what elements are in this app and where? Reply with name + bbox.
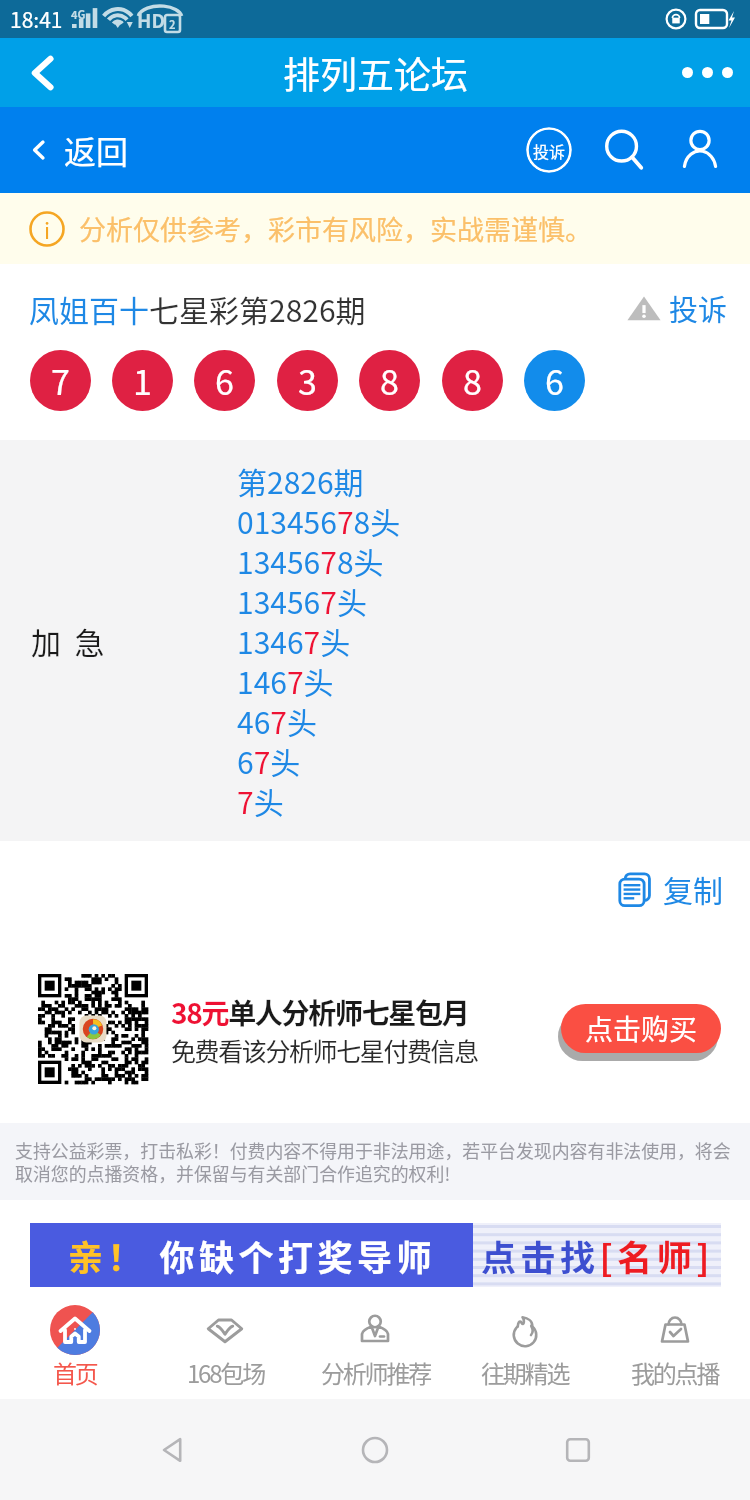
button[interactable]: 返回 xyxy=(0,107,750,193)
button[interactable]: 8 xyxy=(359,350,420,411)
staticText: 排列五论坛 xyxy=(283,46,468,100)
staticText: 分析仅供参考，彩市有风险，实战需谨慎。 xyxy=(79,209,592,248)
staticText: 首页 xyxy=(53,1355,97,1390)
button[interactable]: 6 xyxy=(524,350,585,411)
staticText: 亲！ 你缺个打奖导师 xyxy=(68,1230,436,1281)
button[interactable]: 投诉 xyxy=(626,287,728,329)
staticText: 点击找[名师] xyxy=(481,1230,714,1281)
staticText: 3 xyxy=(298,356,317,405)
button[interactable]: 6 xyxy=(194,350,255,411)
button[interactable]: 首页 xyxy=(0,1288,150,1399)
button[interactable]: Profile xyxy=(676,126,724,174)
staticText: 支持公益彩票，打击私彩！付费内容不得用于非法用途，若平台发现内容有非法使用，将会… xyxy=(15,1137,742,1186)
staticText: 6 xyxy=(215,356,234,405)
button[interactable]: More options xyxy=(664,38,750,107)
staticText: 4G xyxy=(71,6,86,22)
button[interactable]: 1 xyxy=(112,350,173,411)
button[interactable]: 亲！ 你缺个打奖导师 xyxy=(30,1223,721,1287)
staticText: 8 xyxy=(380,356,399,405)
button[interactable]: Recents xyxy=(548,1420,608,1480)
staticText: HD xyxy=(137,6,165,32)
button[interactable]: 168包场 xyxy=(150,1288,300,1399)
staticText: 6 xyxy=(545,356,564,405)
staticText: 复制 xyxy=(663,867,723,910)
staticText: i xyxy=(44,213,51,245)
staticText: 我的点播 xyxy=(631,1355,719,1390)
staticText: 8 xyxy=(463,356,482,405)
button[interactable]: 往期精选 xyxy=(450,1288,600,1399)
staticText: 第2826期 01345678头 1345678头 134567头 13467头… xyxy=(237,459,750,822)
staticText: 分析师推荐 xyxy=(321,1355,430,1390)
staticText: 投诉 xyxy=(669,287,728,329)
staticText: 38元单人分析师七星包月 免费看该分析师七星付费信息 xyxy=(171,992,478,1068)
button[interactable]: 我的点播 xyxy=(600,1288,750,1399)
staticText: 18:41 xyxy=(10,4,63,34)
staticText: 凤姐百十七星彩第2826期 xyxy=(29,287,366,330)
button[interactable]: 8 xyxy=(442,350,503,411)
button[interactable]: 复制 xyxy=(616,867,723,910)
staticText: 返回 xyxy=(64,127,129,173)
button[interactable]: Search xyxy=(600,126,648,174)
button[interactable]: 分析师推荐 xyxy=(300,1288,450,1399)
staticText: 往期精选 xyxy=(481,1355,569,1390)
staticText: 1 xyxy=(133,356,152,405)
staticText: 2 xyxy=(169,16,176,32)
staticText: 7 xyxy=(51,356,70,405)
button[interactable]: Home xyxy=(345,1420,405,1480)
button[interactable]: Back xyxy=(0,38,86,107)
button[interactable]: 点击购买 xyxy=(561,1004,721,1053)
staticText: 点击购买 xyxy=(585,1008,698,1049)
staticText: 加 急 xyxy=(31,619,105,662)
button[interactable]: 投诉 xyxy=(526,127,572,173)
button[interactable]: 3 xyxy=(277,350,338,411)
staticText: 168包场 xyxy=(187,1355,264,1390)
button[interactable]: 7 xyxy=(30,350,91,411)
button[interactable]: Back xyxy=(143,1420,203,1480)
staticText: 投诉 xyxy=(533,139,566,162)
